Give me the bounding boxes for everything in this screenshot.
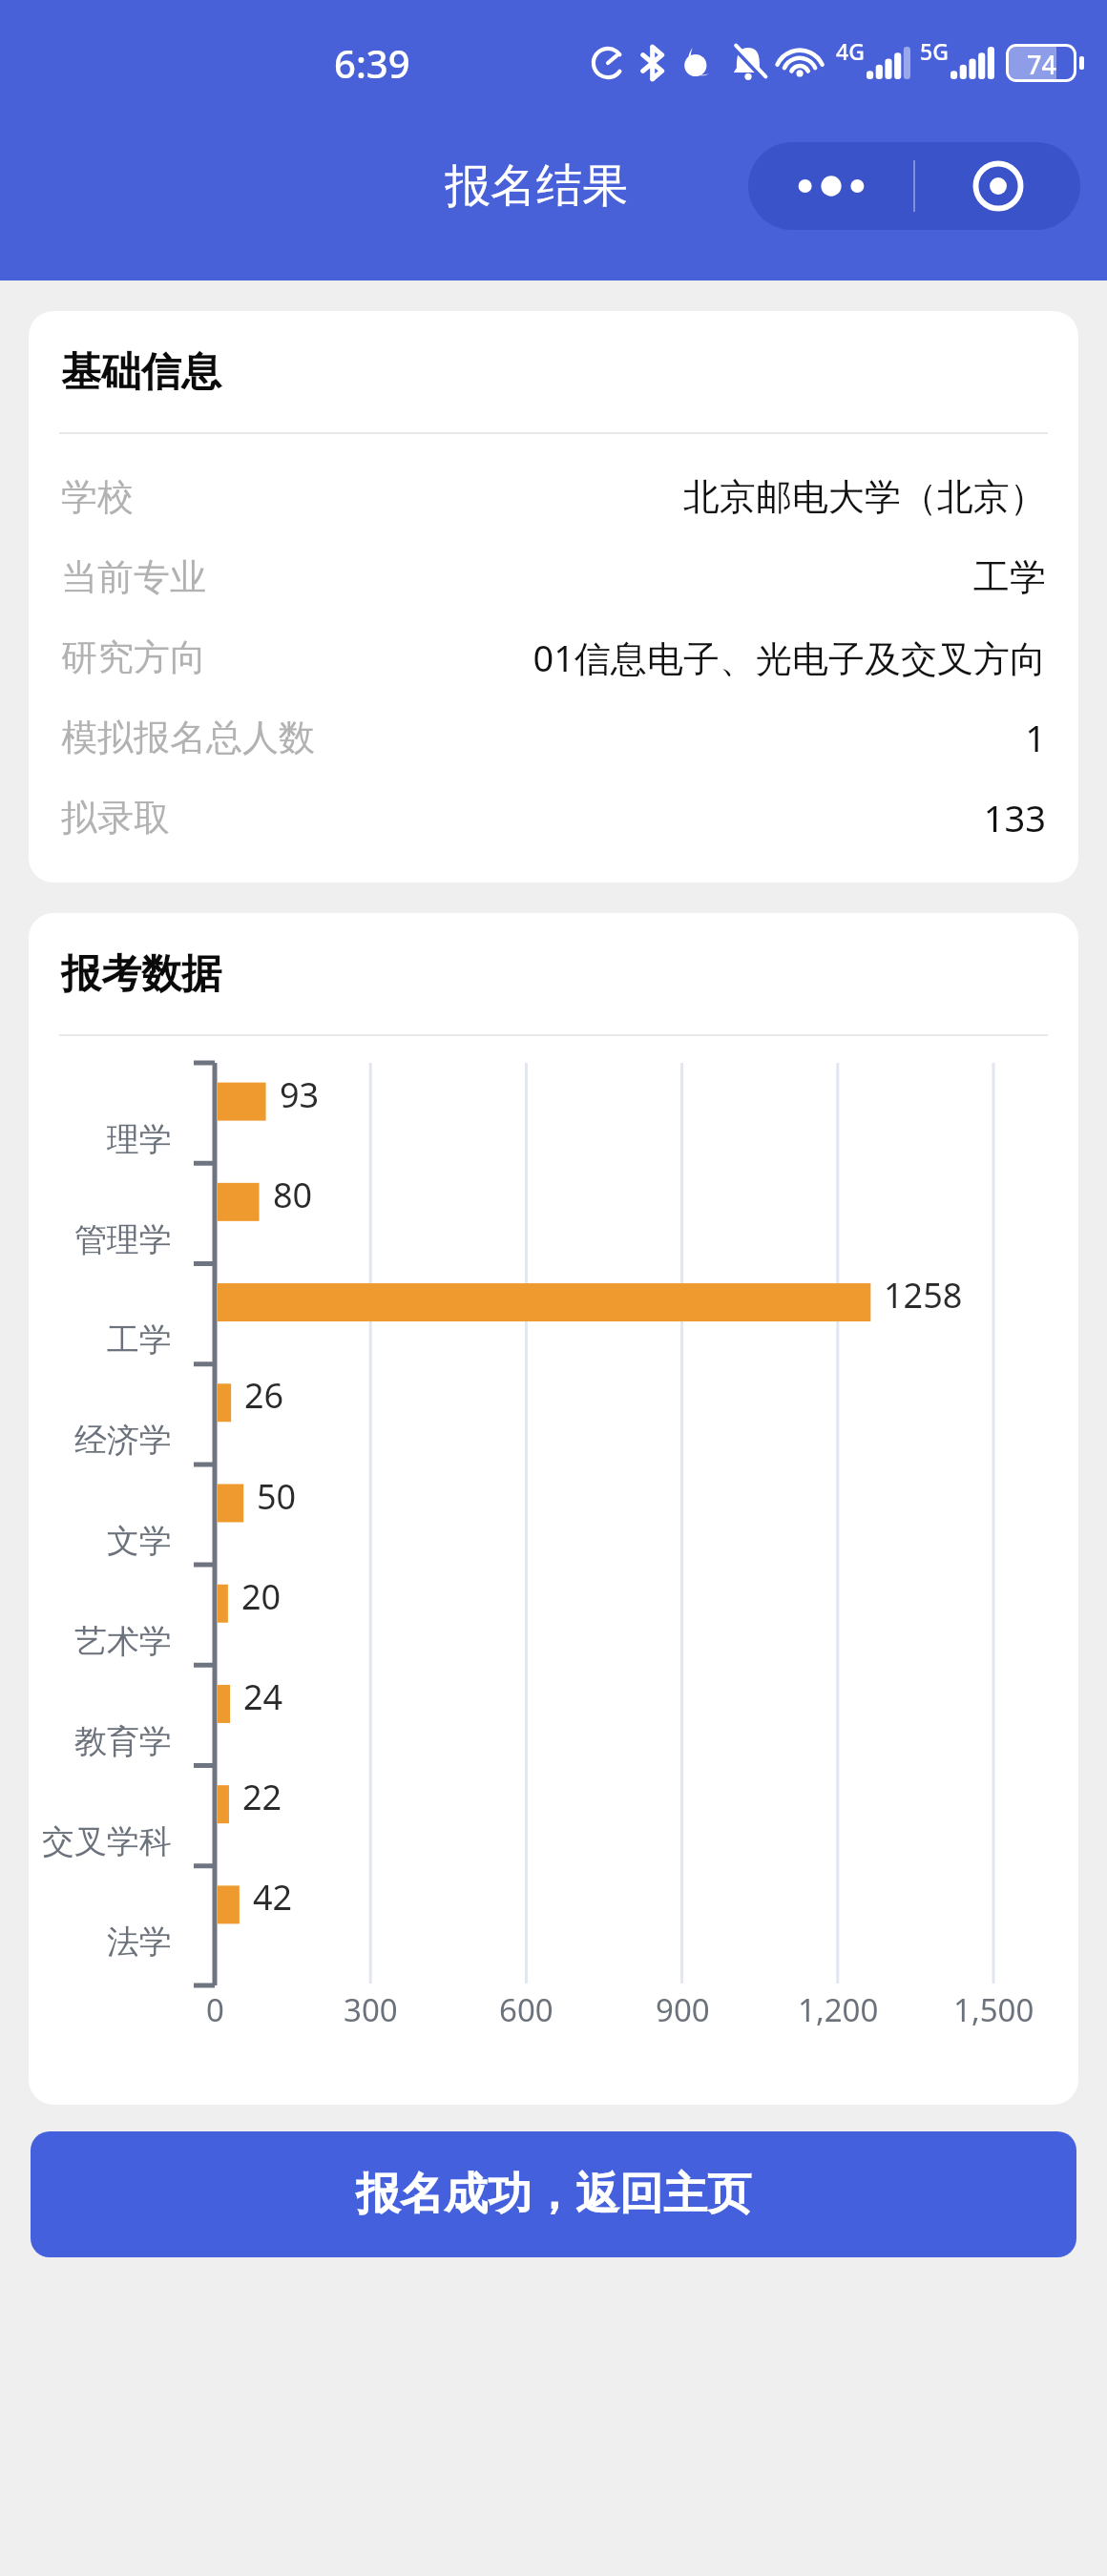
staticText: 24 bbox=[243, 1673, 283, 1720]
staticText: 133 bbox=[983, 793, 1046, 842]
staticText: 管理学 bbox=[74, 1219, 172, 1260]
button[interactable]: More bbox=[748, 142, 1080, 230]
staticText: 01信息电子、光电子及交叉方向 bbox=[533, 633, 1046, 682]
staticText: 报名结果 bbox=[445, 157, 628, 215]
staticText: 法学 bbox=[107, 1922, 172, 1963]
button[interactable]: 拟录取 bbox=[61, 778, 1046, 858]
staticText: 1258 bbox=[884, 1272, 963, 1319]
button[interactable]: 报名成功，返回主页 bbox=[31, 2131, 1076, 2257]
staticText: 300 bbox=[344, 1988, 398, 2031]
staticText: 理学 bbox=[107, 1119, 172, 1160]
button[interactable]: 模拟报名总人数 bbox=[61, 697, 1046, 778]
staticText: 1 bbox=[1025, 713, 1046, 762]
staticText: 26 bbox=[244, 1372, 284, 1419]
staticText: 文学 bbox=[107, 1521, 172, 1562]
staticText: 教育学 bbox=[74, 1721, 172, 1762]
staticText: 研究方向 bbox=[61, 634, 206, 680]
staticText: 学校 bbox=[61, 474, 134, 520]
button[interactable]: More bbox=[748, 142, 913, 230]
staticText: 工学 bbox=[107, 1319, 172, 1361]
staticText: 22 bbox=[242, 1774, 282, 1820]
staticText: 74 bbox=[1027, 47, 1056, 79]
staticText: 20 bbox=[241, 1573, 282, 1620]
staticText: 80 bbox=[273, 1172, 313, 1218]
staticText: 报考数据 bbox=[61, 949, 221, 1000]
staticText: 1,500 bbox=[953, 1988, 1034, 2031]
staticText: 900 bbox=[656, 1988, 710, 2031]
button[interactable]: Close bbox=[915, 142, 1080, 230]
staticText: 0 bbox=[206, 1988, 224, 2031]
staticText: 报名成功，返回主页 bbox=[356, 2167, 751, 2222]
button[interactable]: 当前专业 bbox=[61, 537, 1046, 617]
staticText: 93 bbox=[280, 1071, 320, 1118]
button[interactable]: 研究方向 bbox=[61, 617, 1046, 697]
staticText: 4G bbox=[836, 36, 865, 66]
staticText: 42 bbox=[253, 1874, 293, 1921]
button[interactable]: 学校 bbox=[61, 457, 1046, 537]
staticText: 北京邮电大学（北京） bbox=[683, 474, 1046, 520]
staticText: 50 bbox=[257, 1473, 297, 1520]
staticText: 6:39 bbox=[334, 37, 410, 89]
staticText: 交叉学科 bbox=[42, 1821, 172, 1862]
staticText: 基础信息 bbox=[61, 347, 221, 398]
staticText: 1,200 bbox=[798, 1988, 879, 2031]
staticText: 600 bbox=[499, 1988, 553, 2031]
staticText: 5G bbox=[920, 36, 949, 66]
staticText: 工学 bbox=[973, 554, 1046, 600]
staticText: 经济学 bbox=[74, 1420, 172, 1461]
staticText: 拟录取 bbox=[61, 795, 170, 841]
staticText: 当前专业 bbox=[61, 554, 206, 600]
staticText: 模拟报名总人数 bbox=[61, 715, 315, 760]
staticText: 艺术学 bbox=[74, 1621, 172, 1662]
